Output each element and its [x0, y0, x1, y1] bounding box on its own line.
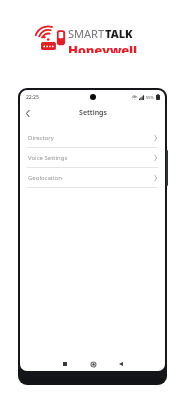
staticText: Directory [28, 134, 54, 142]
button[interactable]: Voice Settings [20, 148, 165, 167]
button[interactable]: Back [112, 357, 130, 371]
button[interactable]: Back [20, 105, 36, 121]
button[interactable]: Recent apps [56, 357, 74, 371]
staticText: Voice Settings [28, 154, 68, 162]
button[interactable]: Home [84, 357, 102, 371]
staticText: TALK [105, 26, 133, 41]
staticText: 22:25 [26, 94, 39, 101]
staticText: 55% [146, 95, 154, 100]
button[interactable]: Directory [20, 128, 165, 147]
button[interactable]: Geolocation [20, 168, 165, 187]
staticText: SMART [68, 26, 105, 41]
staticText: Honeywell [68, 41, 138, 53]
staticText: Settings [79, 108, 107, 118]
staticText: Geolocation [28, 174, 62, 182]
